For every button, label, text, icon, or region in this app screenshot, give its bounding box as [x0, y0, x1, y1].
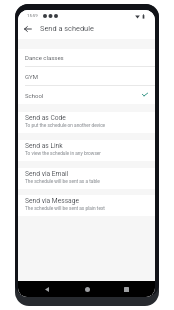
staticText: To view the schedule in any browser: [25, 151, 101, 157]
staticText: GYM: [25, 73, 38, 80]
staticText: Send a schedule: [40, 24, 94, 33]
button[interactable]: Send as Code: [18, 112, 155, 133]
staticText: Send as Code: [25, 114, 66, 122]
button[interactable]: Recents: [120, 283, 132, 295]
button[interactable]: Send via Email: [18, 168, 155, 189]
staticText: To put the schedule on another device: [25, 123, 106, 129]
button[interactable]: School: [18, 86, 155, 104]
staticText: 15:59: [27, 13, 38, 18]
staticText: Send via Message: [25, 197, 80, 205]
staticText: Send as Link: [25, 142, 63, 150]
button[interactable]: Dance classes: [18, 49, 155, 66]
staticText: Dance classes: [25, 54, 64, 61]
button[interactable]: Home: [81, 283, 93, 295]
staticText: The schedule will be sent as plain text: [25, 206, 105, 212]
button[interactable]: Back: [21, 22, 35, 36]
button[interactable]: Back: [41, 283, 53, 295]
button[interactable]: Send as Link: [18, 140, 155, 161]
staticText: School: [25, 92, 44, 99]
staticText: The schedule will be sent as a table: [25, 179, 100, 185]
button[interactable]: Send via Message: [18, 195, 155, 216]
button[interactable]: GYM: [18, 67, 155, 85]
staticText: Send via Email: [25, 170, 69, 178]
